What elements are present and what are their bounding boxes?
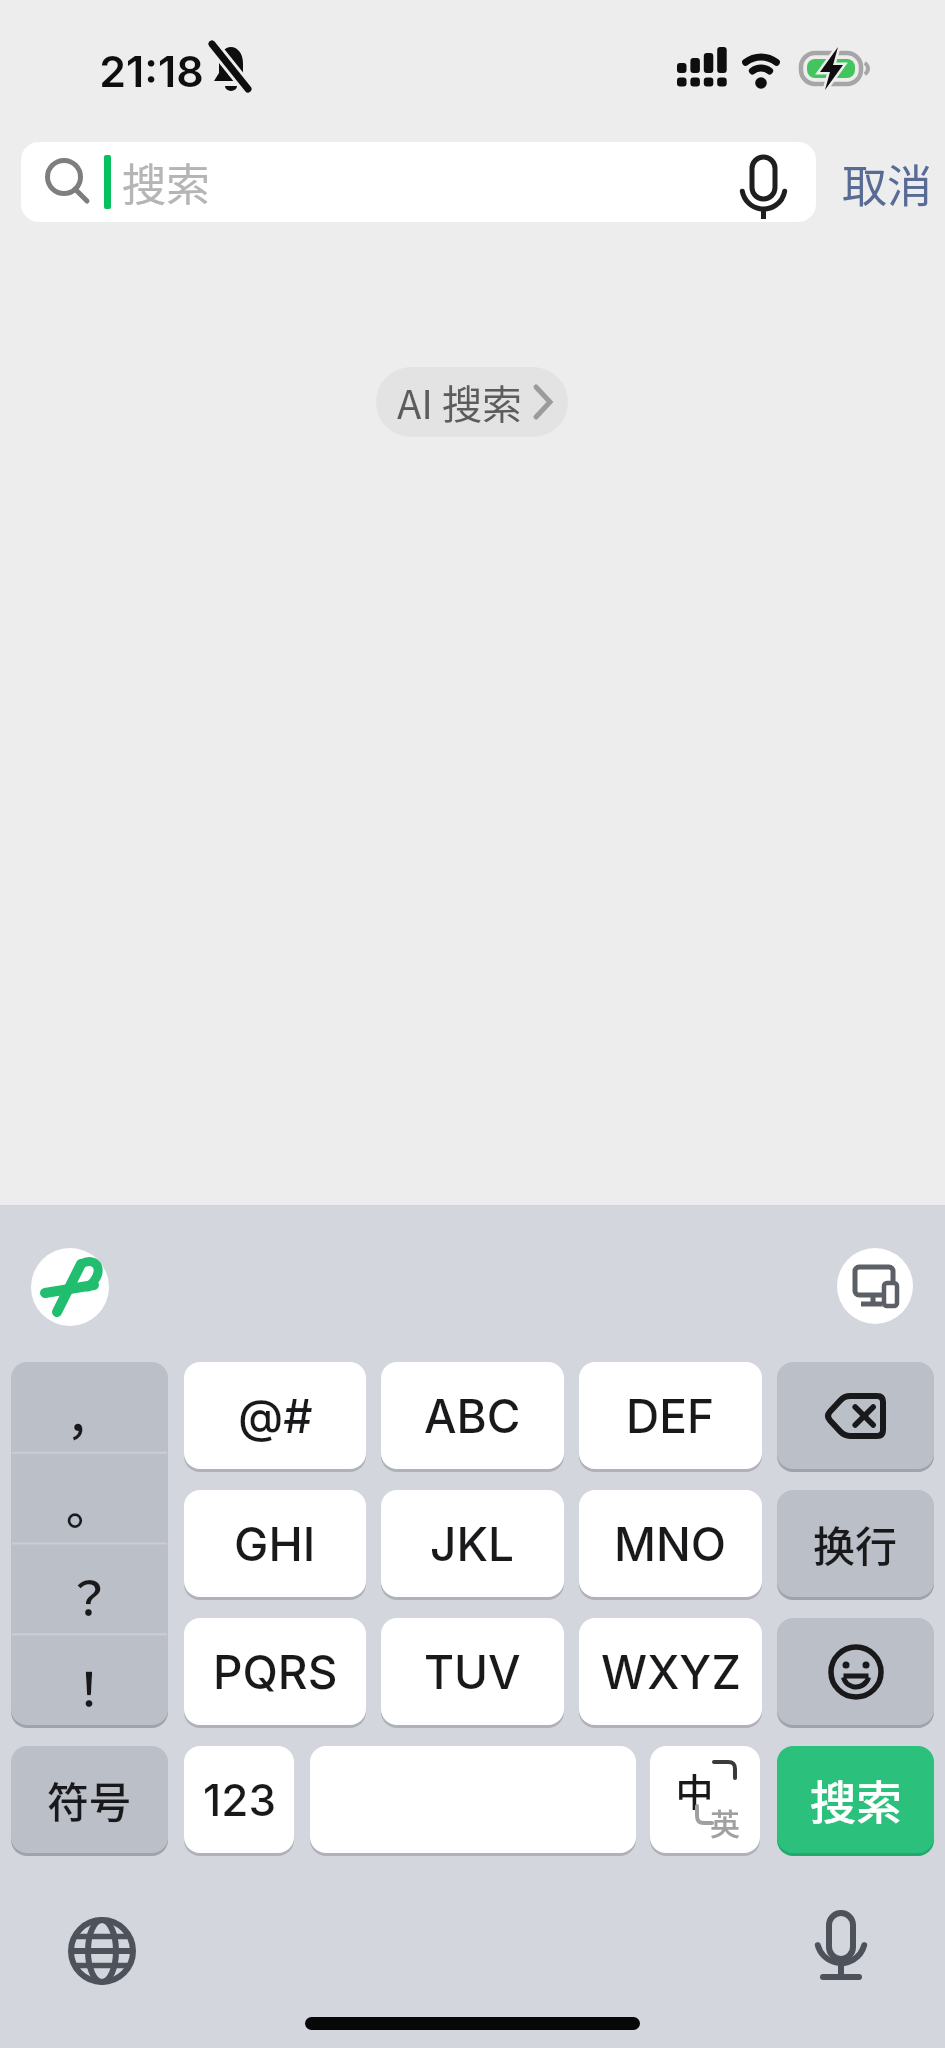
staticText: 搜索 (810, 1766, 902, 1833)
staticText: PQRS (213, 1644, 338, 1700)
button[interactable]: MNO (579, 1490, 762, 1597)
button[interactable]: @# (184, 1362, 366, 1469)
button[interactable]: 取消 (830, 150, 945, 216)
staticText: 21:18 (99, 45, 204, 97)
staticText: GHI (234, 1516, 316, 1572)
staticText: 中 (675, 1762, 714, 1817)
button[interactable] (21, 142, 816, 222)
button[interactable]: PQRS (184, 1618, 366, 1725)
staticText: 。 (66, 1471, 112, 1538)
button[interactable]: WXYZ (579, 1618, 762, 1725)
button[interactable]: 换行 (777, 1490, 934, 1597)
staticText: AI 搜索 (397, 373, 522, 431)
staticText: 搜索 (122, 150, 210, 214)
button[interactable]: GHI (184, 1490, 366, 1597)
staticText: 符号 (47, 1769, 132, 1830)
button[interactable]: DEF (579, 1362, 762, 1469)
button[interactable] (837, 1248, 913, 1324)
staticText: ABC (424, 1388, 521, 1444)
staticText: 换行 (813, 1513, 898, 1574)
staticText: JKL (430, 1516, 515, 1572)
button[interactable] (777, 1362, 934, 1469)
staticText: ？ (66, 1562, 112, 1629)
staticText: TUV (424, 1644, 521, 1700)
button[interactable]: TUV (381, 1618, 564, 1725)
button[interactable] (650, 1746, 760, 1853)
button[interactable] (376, 367, 568, 437)
staticText: WXYZ (601, 1644, 741, 1700)
button[interactable]: ABC (381, 1362, 564, 1469)
button[interactable] (777, 1618, 934, 1725)
staticText: 123 (203, 1773, 276, 1826)
staticText: @# (238, 1388, 313, 1444)
button[interactable]: 123 (184, 1746, 294, 1853)
button[interactable]: JKL (381, 1490, 564, 1597)
button[interactable] (310, 1746, 636, 1853)
staticText: MNO (614, 1516, 727, 1572)
button[interactable] (11, 1362, 168, 1725)
staticText: 英 (710, 1800, 740, 1843)
staticText: 取消 (842, 151, 933, 216)
staticText: ！ (66, 1653, 112, 1720)
staticText: DEF (626, 1388, 715, 1444)
button[interactable] (60, 1910, 144, 1994)
button[interactable] (31, 1248, 109, 1326)
button[interactable]: 符号 (11, 1746, 168, 1853)
button[interactable] (799, 1906, 883, 1990)
staticText: ， (66, 1381, 112, 1448)
button[interactable]: 搜索 (777, 1746, 934, 1853)
